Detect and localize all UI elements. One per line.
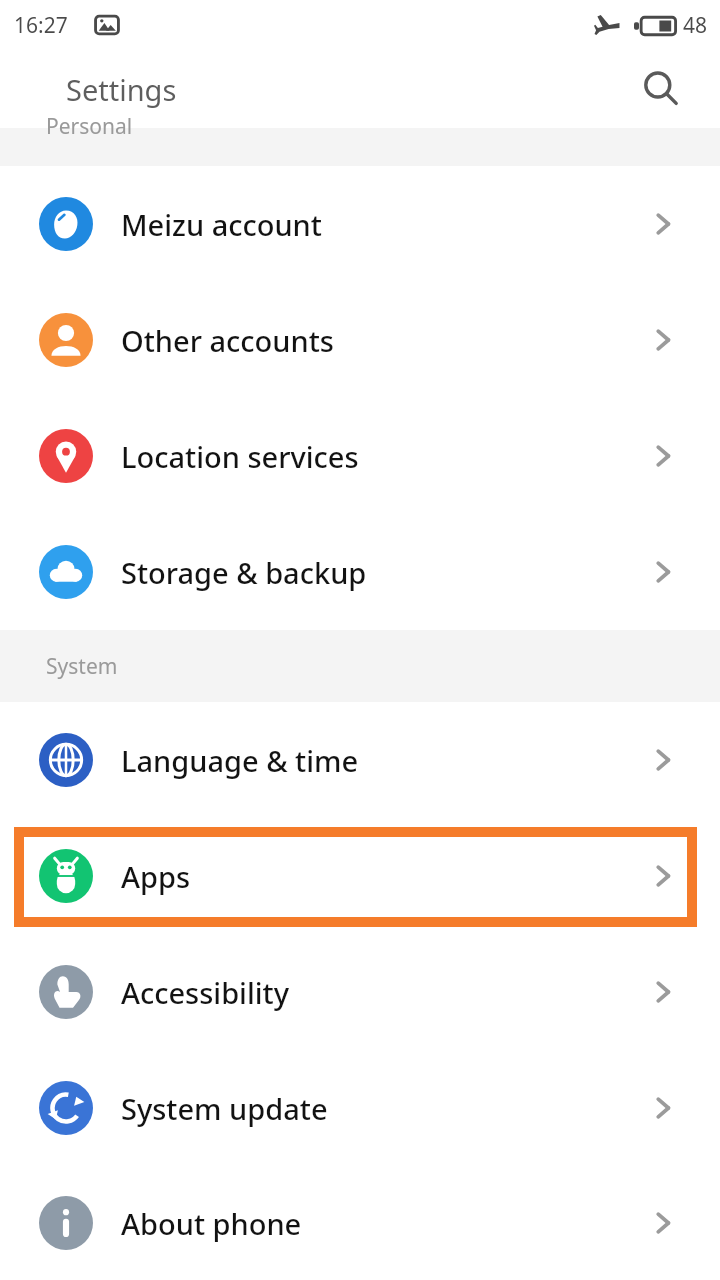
- staticText: Language & time: [121, 741, 646, 780]
- button[interactable]: Location services: [0, 398, 720, 514]
- staticText: System update: [121, 1089, 646, 1128]
- staticText: Apps: [121, 857, 646, 896]
- button[interactable]: System update: [0, 1050, 720, 1166]
- button[interactable]: Apps: [0, 818, 720, 934]
- staticText: Personal: [46, 112, 133, 141]
- button[interactable]: Storage & backup: [0, 514, 720, 630]
- staticText: Meizu account: [121, 205, 646, 244]
- staticText: Storage & backup: [121, 553, 646, 592]
- staticText: Accessibility: [121, 973, 646, 1012]
- staticText: Other accounts: [121, 321, 646, 360]
- button[interactable]: Language & time: [0, 702, 720, 818]
- button[interactable]: Other accounts: [0, 282, 720, 398]
- button[interactable]: Meizu account: [0, 166, 720, 282]
- staticText: 48: [683, 11, 708, 40]
- staticText: 16:27: [14, 11, 68, 40]
- staticText: About phone: [121, 1204, 646, 1243]
- staticText: Settings: [66, 70, 177, 109]
- button[interactable]: About phone: [0, 1166, 720, 1280]
- button[interactable]: Accessibility: [0, 934, 720, 1050]
- staticText: System: [46, 652, 118, 681]
- staticText: Location services: [121, 437, 646, 476]
- button[interactable]: Search: [636, 64, 686, 114]
